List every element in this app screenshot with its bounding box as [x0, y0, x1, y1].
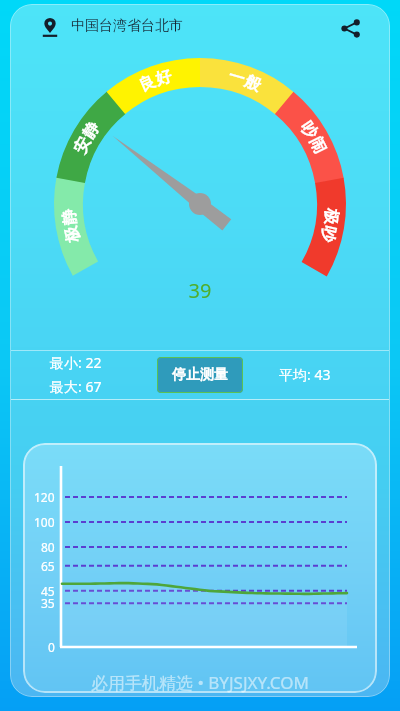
staticText: 39	[0, 277, 400, 304]
staticText: 平均: 43	[279, 365, 331, 384]
staticText: 最大: 67	[50, 377, 102, 396]
button[interactable]: 停止测量	[157, 357, 243, 393]
staticText: 停止测量	[172, 366, 228, 384]
staticText: 最小: 22	[50, 353, 102, 372]
button[interactable]: Share	[332, 10, 368, 46]
button[interactable]: Location	[32, 9, 68, 45]
staticText: 必用手机精选 • BYJSJXY.COM	[0, 671, 400, 694]
staticText: 中国台湾省台北市	[71, 17, 183, 35]
